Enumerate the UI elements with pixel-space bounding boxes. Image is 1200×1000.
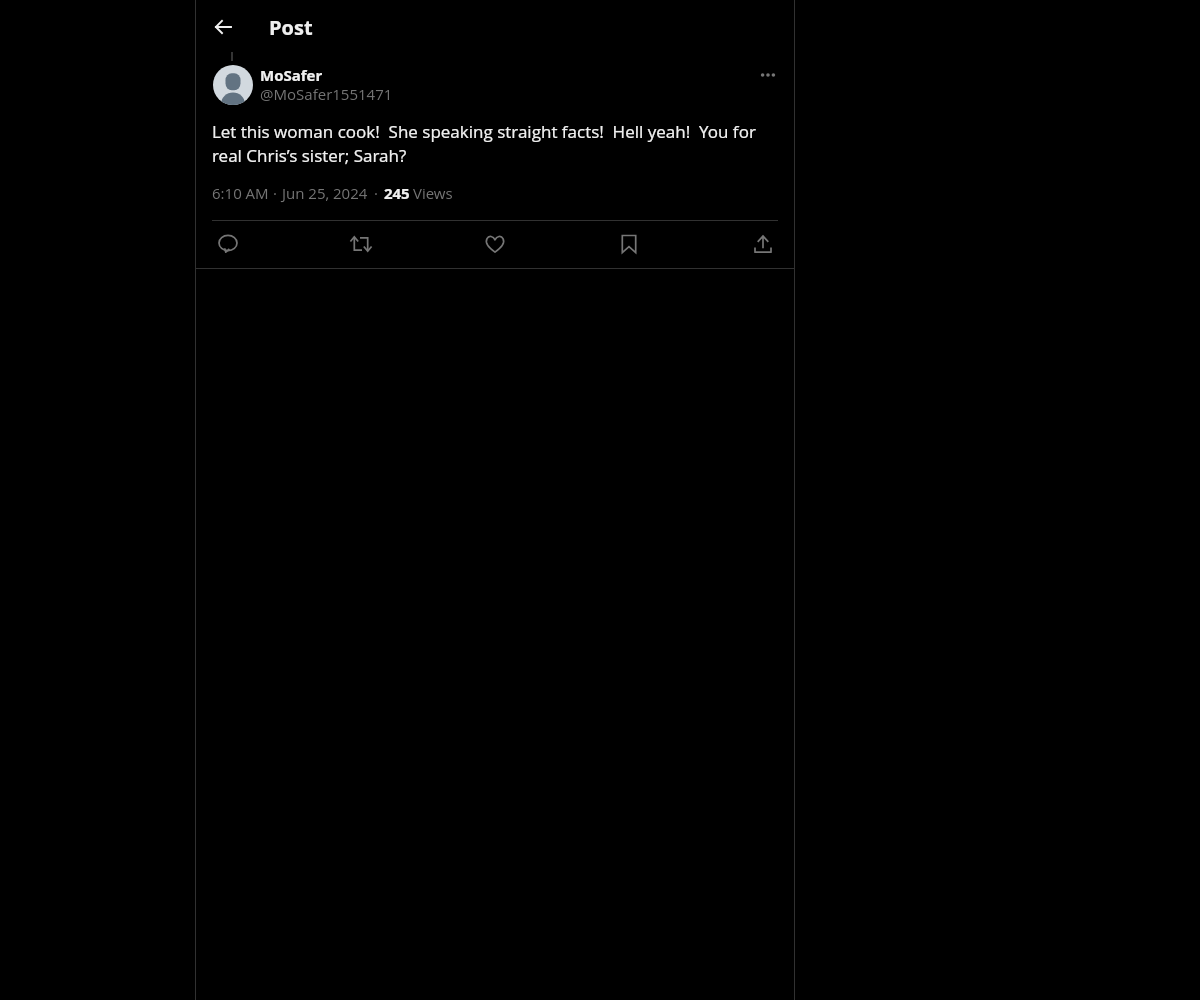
staticText: Post — [269, 14, 313, 41]
staticText: Let this woman cook! She speaking straig… — [212, 120, 778, 167]
button[interactable]: Bookmark — [609, 224, 649, 264]
staticText: 245 — [384, 183, 410, 203]
button[interactable]: Repost — [341, 224, 381, 264]
staticText: · — [374, 183, 378, 203]
staticText: Views — [413, 183, 453, 203]
button[interactable]: MoSafer — [260, 64, 420, 104]
staticText: · — [273, 183, 277, 203]
button[interactable]: More options — [748, 55, 788, 95]
staticText: Jun 25, 2024 — [282, 183, 368, 203]
button[interactable]: Share — [743, 224, 783, 264]
button[interactable]: Reply — [208, 224, 248, 264]
staticText: @MoSafer1551471 — [260, 84, 393, 104]
button[interactable]: Back — [200, 4, 245, 49]
button[interactable]: Like — [475, 224, 515, 264]
staticText: 6:10 AM — [212, 183, 269, 203]
button[interactable]: Profile picture — [213, 65, 253, 105]
staticText: MoSafer — [260, 65, 323, 85]
